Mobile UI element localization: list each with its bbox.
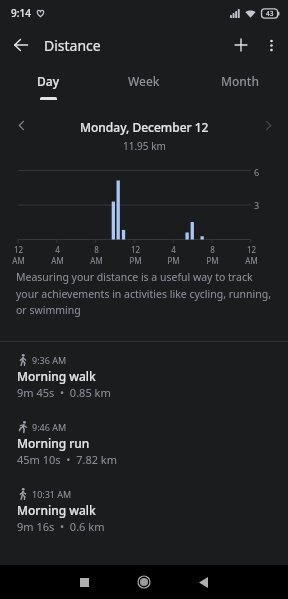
- staticText: 11.95 km: [123, 139, 166, 153]
- staticText: 9:14: [11, 6, 31, 20]
- staticText: 8 PM: [206, 244, 219, 266]
- staticText: 43: [266, 9, 274, 18]
- staticText: Monday, December 12: [80, 119, 209, 135]
- staticText: 12 PM: [129, 244, 142, 266]
- button[interactable]: More options: [256, 30, 286, 60]
- button[interactable]: Month: [192, 64, 288, 100]
- button[interactable]: Back: [3, 27, 39, 63]
- button[interactable]: 10:31 AM: [0, 481, 288, 548]
- staticText: 9:46 AM: [32, 421, 67, 433]
- staticText: 12 AM: [245, 244, 258, 266]
- button[interactable]: Next day: [255, 112, 281, 138]
- staticText: Day: [37, 73, 59, 89]
- staticText: 3: [254, 199, 260, 211]
- staticText: 12 AM: [12, 244, 25, 266]
- staticText: Measuring your distance is a useful way …: [16, 270, 272, 317]
- staticText: Week: [128, 73, 160, 89]
- button[interactable]: Previous day: [8, 112, 34, 138]
- staticText: Morning walk: [17, 368, 96, 384]
- button[interactable]: Week: [96, 64, 192, 100]
- button[interactable]: Home: [129, 567, 159, 597]
- staticText: Distance: [44, 36, 101, 55]
- staticText: 9:36 AM: [32, 354, 67, 366]
- button[interactable]: Recents: [69, 567, 99, 597]
- staticText: 6: [254, 166, 260, 178]
- staticText: 9m 16s • 0.6 km: [17, 519, 105, 534]
- staticText: Morning run: [17, 435, 90, 451]
- button[interactable]: Add: [223, 27, 259, 63]
- button[interactable]: Day: [0, 64, 96, 100]
- staticText: Morning walk: [17, 502, 96, 518]
- staticText: 45m 10s • 7.82 km: [17, 452, 118, 467]
- staticText: Month: [221, 73, 259, 89]
- staticText: 4 PM: [167, 244, 180, 266]
- staticText: 8 AM: [90, 244, 103, 266]
- button[interactable]: Back: [188, 567, 218, 597]
- button[interactable]: 9:46 AM: [0, 414, 288, 481]
- staticText: 10:31 AM: [32, 488, 72, 500]
- staticText: 9m 45s • 0.85 km: [17, 385, 111, 400]
- staticText: 4 AM: [51, 244, 64, 266]
- button[interactable]: 9:36 AM: [0, 347, 288, 414]
